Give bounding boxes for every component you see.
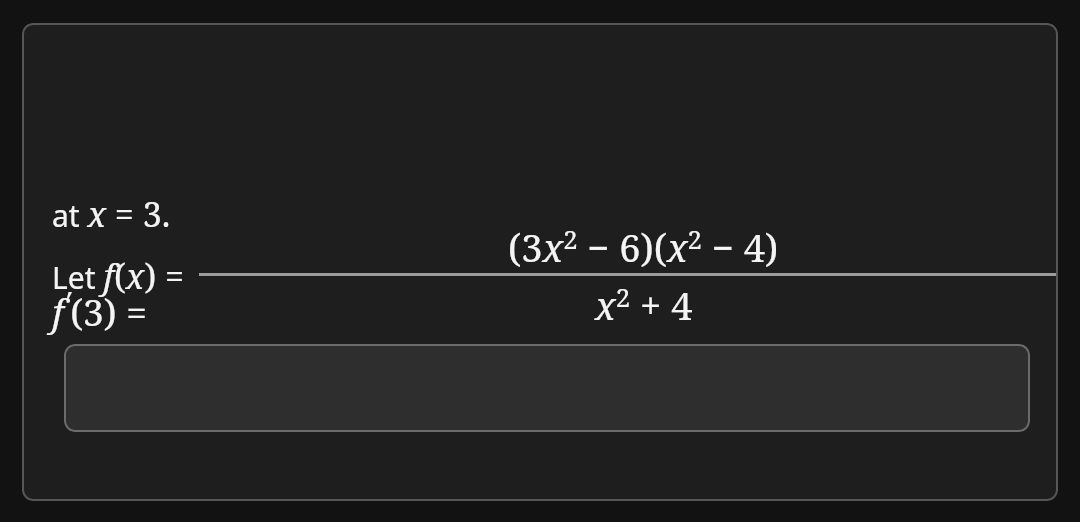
staticText: (3x2 − 6)(x2 − 4) xyxy=(508,221,779,273)
button[interactable]: Answer input field xyxy=(64,344,1030,432)
staticText: x2 + 4 xyxy=(595,279,693,331)
staticText: f′(3) = xyxy=(52,281,147,337)
button[interactable]: Let f(x) = xyxy=(22,23,1058,501)
staticText: Let f(x) = xyxy=(52,253,193,299)
staticText: at x = 3. xyxy=(52,191,171,237)
